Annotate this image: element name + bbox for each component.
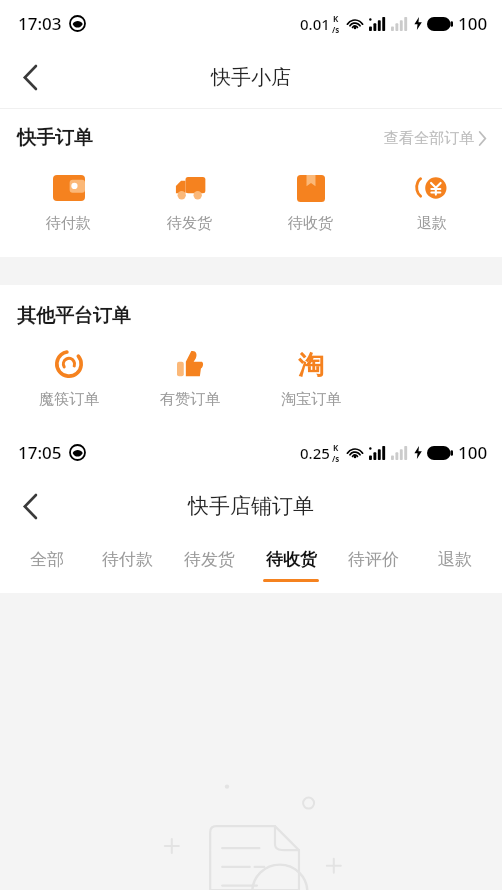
staticText: K <box>333 442 339 453</box>
staticText: K <box>333 13 339 24</box>
staticText: 快手店铺订单 <box>188 493 314 519</box>
staticText: 全部 <box>30 549 64 570</box>
button[interactable]: 待付款 <box>8 167 129 237</box>
button[interactable]: 待收货 <box>250 167 371 237</box>
button[interactable]: 有赞订单 <box>129 343 250 413</box>
staticText: 待收货 <box>266 549 317 570</box>
staticText: 待收货 <box>288 214 333 233</box>
staticText: 待发货 <box>167 214 212 233</box>
staticText: 待发货 <box>184 549 235 570</box>
staticText: 待付款 <box>46 214 91 233</box>
button[interactable]: 退款 <box>414 537 496 593</box>
staticText: 0.01 <box>300 14 330 34</box>
staticText: 待付款 <box>102 549 153 570</box>
button[interactable]: 魔筷订单 <box>8 343 129 413</box>
staticText: 100 <box>458 441 488 464</box>
staticText: 100 <box>458 12 488 35</box>
button[interactable]: Back <box>6 482 54 530</box>
staticText: 查看全部订单 <box>384 129 474 148</box>
staticText: /s <box>332 24 340 35</box>
staticText: 退款 <box>417 214 447 233</box>
staticText: 待评价 <box>348 549 399 570</box>
staticText: 淘宝订单 <box>281 390 341 409</box>
staticText: /s <box>332 453 340 464</box>
staticText: 17:05 <box>18 441 62 464</box>
staticText: 17:03 <box>18 12 62 35</box>
staticText: 快手订单 <box>17 126 93 150</box>
button[interactable]: 待发货 <box>168 537 250 593</box>
button[interactable]: Back <box>6 53 54 101</box>
staticText: 0.25 <box>300 443 330 463</box>
staticText: 淘 <box>298 349 324 379</box>
staticText: 魔筷订单 <box>39 390 99 409</box>
staticText: 退款 <box>438 549 472 570</box>
button[interactable]: 待发货 <box>129 167 250 237</box>
button[interactable]: 待收货 <box>250 537 332 593</box>
button[interactable]: 淘 <box>250 343 371 413</box>
button[interactable]: 查看全部订单 <box>380 125 490 152</box>
button[interactable]: 退款 <box>371 167 492 237</box>
staticText: 快手小店 <box>211 65 291 90</box>
button[interactable]: 待评价 <box>332 537 414 593</box>
staticText: 其他平台订单 <box>17 304 131 328</box>
button[interactable]: 待付款 <box>87 537 168 593</box>
button[interactable]: 全部 <box>6 537 87 593</box>
staticText: 有赞订单 <box>160 390 220 409</box>
